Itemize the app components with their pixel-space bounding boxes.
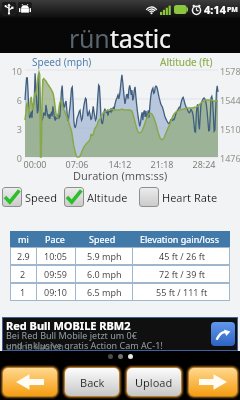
staticText: 28:24	[187, 158, 221, 170]
staticText: mi	[18, 233, 29, 245]
staticText: Altitude (ft)	[160, 55, 213, 69]
button[interactable]: Altitude	[64, 187, 128, 207]
staticText: 72 ft / 39 ft	[159, 268, 205, 280]
staticText: 5.9 mph	[87, 250, 122, 262]
staticText: 6.0 mph	[87, 268, 122, 280]
button[interactable]: 2.9	[10, 247, 230, 265]
staticText: 55 ft / 111 ft	[156, 286, 208, 298]
staticText: 0	[0, 152, 22, 164]
staticText: 3	[0, 123, 22, 135]
staticText: 1	[20, 286, 26, 298]
button[interactable]: Speed	[2, 187, 57, 207]
staticText: 1476	[220, 152, 240, 164]
staticText: tastic	[110, 21, 171, 55]
staticText: 1510	[220, 123, 240, 135]
staticText: rün	[69, 21, 110, 55]
button[interactable]: Red Bull MOBILE RBM2	[2, 317, 238, 351]
button[interactable]: 2	[10, 265, 230, 283]
staticText: Duration (mms:ss)	[73, 168, 168, 183]
staticText: 00:00	[18, 158, 52, 170]
staticText: 09:59	[44, 268, 68, 280]
staticText: Upload	[135, 375, 173, 390]
button[interactable]: Upload	[127, 368, 181, 396]
staticText: PM	[227, 5, 238, 15]
staticText: 21:18	[145, 158, 179, 170]
staticText: 1578	[220, 65, 240, 77]
button[interactable]: Open advert	[211, 322, 235, 346]
staticText: online kaufen	[6, 340, 64, 352]
staticText: Speed (mph)	[32, 55, 92, 69]
staticText: Bei Red Bull Mobile jetzt um 0€	[6, 329, 137, 341]
staticText: 10	[0, 65, 22, 77]
staticText: 09:10	[44, 286, 68, 298]
staticText: 2	[20, 268, 26, 280]
staticText: Speed	[25, 190, 57, 205]
staticText: und inklusive gratis Action Cam AC-1!	[6, 339, 163, 351]
staticText: 2.9	[17, 250, 30, 262]
staticText: 10:05	[44, 250, 68, 262]
staticText: 14:12	[103, 158, 137, 170]
staticText: 45 ft / 26 ft	[159, 250, 205, 262]
staticText: Speed	[89, 233, 116, 245]
staticText: 6	[0, 94, 22, 106]
button[interactable]: Next	[189, 368, 237, 396]
staticText: 07:06	[60, 158, 94, 170]
staticText: 1544	[220, 94, 240, 106]
staticText: Red Bull MOBILE RBM2	[6, 318, 131, 333]
staticText: 4:14	[204, 2, 226, 17]
button[interactable]: Back	[65, 368, 119, 396]
staticText: 6.5 mph	[87, 286, 122, 298]
button[interactable]: Previous	[3, 368, 57, 396]
staticText: Pace	[45, 233, 65, 245]
staticText: Elevation gain/loss	[140, 233, 219, 245]
staticText: Back	[80, 375, 105, 390]
staticText: Heart Rate	[162, 190, 218, 205]
button[interactable]: Heart Rate	[139, 187, 218, 207]
button[interactable]: 1	[10, 283, 230, 301]
staticText: Altitude	[87, 190, 128, 205]
